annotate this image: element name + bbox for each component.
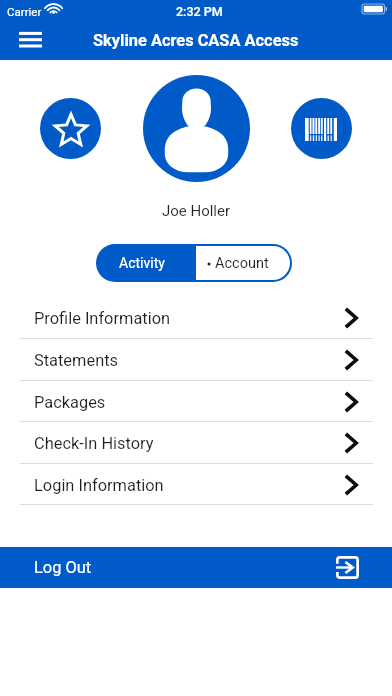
staticText: Check-In History: [34, 434, 154, 453]
staticText: Joe Holler: [0, 202, 392, 220]
staticText: Account: [215, 255, 269, 272]
button[interactable]: Favorites: [40, 98, 101, 159]
button[interactable]: Login Information: [0, 464, 392, 506]
button[interactable]: Open navigation menu: [9, 22, 51, 56]
staticText: Activity: [119, 255, 165, 271]
button[interactable]: Profile Information: [0, 297, 392, 339]
button[interactable]: Statements: [0, 339, 392, 381]
staticText: Login Information: [34, 476, 164, 495]
button[interactable]: Profile photo: [143, 75, 250, 182]
staticText: Statements: [34, 351, 119, 370]
button[interactable]: Check-In History: [0, 422, 392, 464]
staticText: Profile Information: [34, 309, 171, 328]
button[interactable]: Activity: [96, 244, 196, 282]
button[interactable]: Show barcode: [291, 98, 352, 159]
button[interactable]: Log Out: [0, 547, 392, 588]
staticText: Carrier: [7, 5, 42, 18]
staticText: Log Out: [34, 558, 92, 577]
button[interactable]: Packages: [0, 381, 392, 423]
button[interactable]: Account: [196, 244, 292, 282]
staticText: 2:32 PM: [176, 4, 223, 19]
staticText: Skyline Acres CASA Access: [93, 31, 299, 50]
staticText: Packages: [34, 393, 106, 412]
